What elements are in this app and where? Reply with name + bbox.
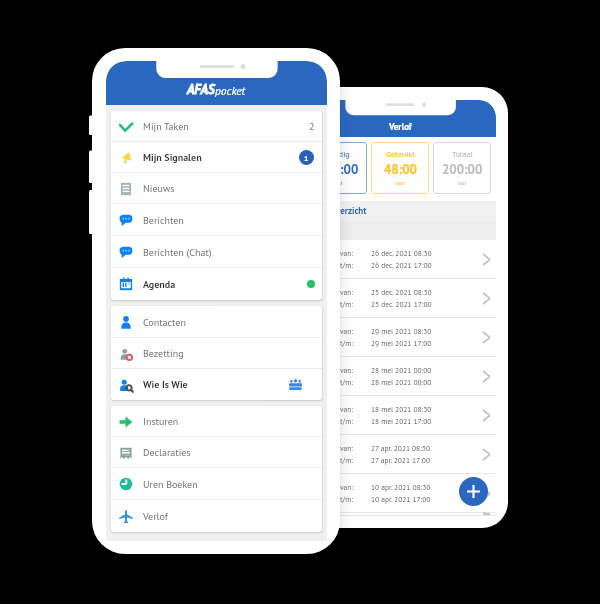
staticText: Verlof <box>389 121 412 133</box>
staticText: 26 dec. 2021 17:00 <box>371 260 432 270</box>
staticText: van: <box>340 287 354 297</box>
button[interactable]: Huidig <box>310 142 367 194</box>
button[interactable]: Gebruikt <box>371 142 429 194</box>
button[interactable]: Wie Is Wie <box>111 369 322 400</box>
button[interactable]: Contacten <box>111 306 322 338</box>
button[interactable]: Bezetting <box>111 338 322 369</box>
button[interactable]: van: <box>304 513 496 516</box>
staticText: Berichten <box>143 214 184 227</box>
staticText: Overzicht <box>330 205 367 217</box>
staticText: 10 apr. 2021 17:00 <box>371 494 431 504</box>
staticText: Declaraties <box>143 446 191 459</box>
button[interactable]: Add <box>459 477 488 506</box>
staticText: Totaal <box>452 149 473 159</box>
staticText: 18 mei 2021 08:30 <box>371 404 432 414</box>
staticText: van: <box>340 513 354 515</box>
staticText: t/m: <box>340 377 353 387</box>
staticText: 27 apr. 2021 08:30 <box>371 443 431 453</box>
button[interactable]: Uren Boeken <box>111 468 322 500</box>
staticText: uur <box>396 179 405 187</box>
staticText: t/m: <box>340 299 353 309</box>
staticText: pocket <box>215 83 246 98</box>
staticText: Agenda <box>143 278 176 291</box>
staticText: Mijn Signalen <box>143 151 202 164</box>
button[interactable]: van: <box>304 474 496 513</box>
staticText: t/m: <box>340 338 353 348</box>
staticText: t/m: <box>340 416 353 426</box>
staticText: 28 mei 2021 00:00 <box>371 377 432 387</box>
button[interactable]: Agenda <box>111 268 322 300</box>
staticText: Berichten (Chat) <box>143 246 212 259</box>
staticText: Nieuws <box>143 182 175 195</box>
staticText: t/m: <box>340 455 353 465</box>
staticText: Mijn Taken <box>143 120 189 133</box>
button[interactable]: Declaraties <box>111 437 322 468</box>
button[interactable]: Totaal <box>433 142 491 194</box>
staticText: Bezetting <box>143 347 184 360</box>
staticText: 28 mei 2021 00:00 <box>371 365 432 375</box>
staticText: 200:00 <box>442 161 483 178</box>
button[interactable]: van: <box>304 357 496 396</box>
button[interactable]: van: <box>304 279 496 318</box>
button[interactable]: Mijn Signalen <box>111 142 322 173</box>
staticText: 48:00 <box>384 161 417 178</box>
staticText: Uren Boeken <box>143 478 198 491</box>
staticText: van: <box>340 482 354 492</box>
staticText: Huidig <box>327 149 350 159</box>
button[interactable]: Nieuws <box>111 173 322 204</box>
staticText: van: <box>340 365 354 375</box>
button[interactable]: van: <box>304 240 496 279</box>
staticText: 2 <box>309 120 315 133</box>
staticText: 10 apr. 2021 08:30 <box>371 482 431 492</box>
button[interactable]: van: <box>304 318 496 357</box>
staticText: 27 apr. 2021 17:00 <box>371 455 431 465</box>
staticText: 1 <box>304 153 309 163</box>
staticText: van: <box>340 443 354 453</box>
button[interactable]: van: <box>304 435 496 474</box>
staticText: 25 dec. 2021 17:00 <box>371 299 432 309</box>
staticText: 25 dec. 2021 08:30 <box>371 287 432 297</box>
button[interactable]: Mijn Taken <box>111 111 322 142</box>
staticText: AFAS <box>187 81 215 98</box>
button[interactable]: Insturen <box>111 406 322 437</box>
button[interactable]: Berichten <box>111 204 322 236</box>
staticText: Wie Is Wie <box>143 378 188 391</box>
staticText: t/m: <box>340 260 353 270</box>
staticText: t/m: <box>340 494 353 504</box>
staticText: Gebruikt <box>386 149 415 159</box>
button[interactable]: Berichten (Chat) <box>111 236 322 268</box>
staticText: 18 mei 2021 17:00 <box>371 416 432 426</box>
staticText: Contacten <box>143 316 186 329</box>
button[interactable]: van: <box>304 396 496 435</box>
button[interactable]: Verlof <box>111 500 322 532</box>
staticText: uur <box>334 179 343 187</box>
staticText: Verlof <box>143 510 168 523</box>
staticText: 29 mei 2021 08:30 <box>371 326 432 336</box>
staticText: 26 dec. 2021 08:30 <box>371 248 432 258</box>
staticText: van: <box>340 248 354 258</box>
staticText: uur <box>458 179 467 187</box>
staticText: van: <box>340 404 354 414</box>
staticText: 29 mei 2021 17:00 <box>371 338 432 348</box>
staticText: Insturen <box>143 415 179 428</box>
staticText: 152:00 <box>318 161 359 178</box>
staticText: van: <box>340 326 354 336</box>
